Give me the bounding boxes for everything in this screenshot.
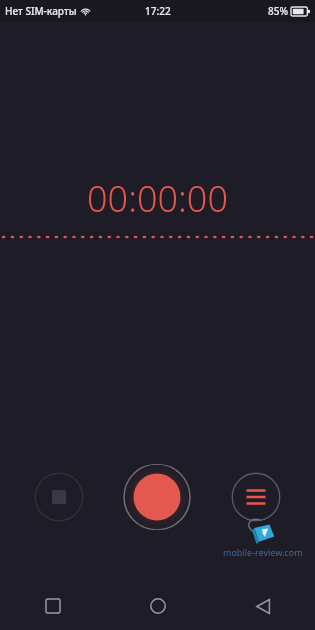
staticText: 00:00:00: [87, 174, 228, 223]
staticText: mobile-review.com: [223, 546, 303, 558]
staticText: Нет SIM-карты: [5, 4, 77, 18]
button[interactable]: Stop: [34, 472, 84, 522]
staticText: 17:22: [145, 4, 171, 18]
button[interactable]: Home: [105, 582, 210, 630]
staticText: 85%: [268, 4, 288, 18]
button[interactable]: Back: [210, 582, 315, 630]
button[interactable]: Recent apps: [0, 582, 105, 630]
button[interactable]: Menu: [231, 472, 281, 522]
button[interactable]: Record: [122, 464, 192, 530]
